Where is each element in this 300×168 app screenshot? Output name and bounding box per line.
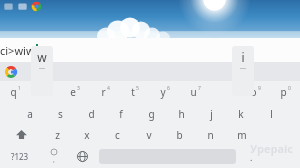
button[interactable]: b xyxy=(164,124,195,145)
staticText: o xyxy=(250,85,257,99)
staticText: w xyxy=(37,49,47,65)
staticText: . xyxy=(250,151,253,163)
staticText: m xyxy=(237,128,247,142)
button[interactable]: i xyxy=(232,46,254,96)
staticText: 1 xyxy=(18,85,21,92)
staticText: j xyxy=(210,107,213,121)
button[interactable]: p xyxy=(270,81,300,103)
button[interactable]: r xyxy=(90,81,120,103)
button[interactable]: u xyxy=(180,81,210,103)
button[interactable]: d xyxy=(76,103,106,124)
staticText: 6 xyxy=(167,85,170,92)
staticText: e xyxy=(70,85,76,99)
button[interactable]: ci>wiw xyxy=(0,38,300,62)
staticText: q xyxy=(10,85,17,99)
staticText: i xyxy=(241,49,245,65)
staticText: s xyxy=(58,107,63,121)
staticText: k xyxy=(238,107,244,121)
staticText: 3 xyxy=(77,85,80,92)
button[interactable]: w xyxy=(31,46,53,96)
staticText: a xyxy=(27,107,33,121)
staticText: 5 xyxy=(136,85,139,92)
staticText: Урераіс xyxy=(250,141,294,156)
button[interactable]: z xyxy=(42,124,72,145)
staticText: ci>wiw xyxy=(0,43,35,58)
button[interactable]: v xyxy=(133,124,164,145)
staticText: z xyxy=(55,128,60,142)
button[interactable]: l xyxy=(256,103,286,124)
button[interactable]: Change keyboard language xyxy=(67,145,97,168)
staticText: b xyxy=(176,128,183,142)
button[interactable]: c xyxy=(102,124,133,145)
staticText: f xyxy=(119,107,123,121)
button[interactable]: . xyxy=(238,145,265,168)
button[interactable]: k xyxy=(226,103,256,124)
staticText: h xyxy=(178,107,185,121)
button[interactable]: m xyxy=(226,124,257,145)
button[interactable]: e xyxy=(60,81,90,103)
button[interactable]: n xyxy=(195,124,226,145)
button[interactable]: x xyxy=(72,124,102,145)
staticText: v xyxy=(146,128,152,142)
staticText: l xyxy=(270,107,273,121)
staticText: g xyxy=(148,107,155,121)
staticText: 0 xyxy=(288,85,291,92)
staticText: x xyxy=(84,128,90,142)
staticText: c xyxy=(115,128,120,142)
button[interactable]: Google xyxy=(4,65,18,79)
button[interactable]: ?123 xyxy=(0,145,40,168)
staticText: 7 xyxy=(198,85,201,92)
button[interactable]: g xyxy=(136,103,166,124)
staticText: r xyxy=(101,85,106,99)
button[interactable]: Enter xyxy=(265,145,300,168)
staticText: n xyxy=(207,128,214,142)
button[interactable]: q xyxy=(0,81,30,103)
button[interactable]: Shift xyxy=(0,124,42,145)
button[interactable]: f xyxy=(106,103,136,124)
button[interactable]: o xyxy=(240,81,270,103)
button[interactable]: a xyxy=(14,103,45,124)
button[interactable]: y xyxy=(150,81,180,103)
staticText: 4 xyxy=(107,85,110,92)
staticText: u xyxy=(190,85,197,99)
staticText: , xyxy=(53,155,55,165)
button[interactable]: j xyxy=(196,103,226,124)
button[interactable]: s xyxy=(45,103,76,124)
staticText: 9 xyxy=(258,85,261,92)
staticText: d xyxy=(88,107,95,121)
button[interactable]: t xyxy=(120,81,150,103)
button[interactable]: Emoji and comma xyxy=(40,145,67,168)
button[interactable]: h xyxy=(166,103,196,124)
staticText: p xyxy=(280,85,287,99)
staticText: y xyxy=(160,85,166,99)
staticText: ?123 xyxy=(11,151,29,162)
staticText: t xyxy=(131,85,135,99)
